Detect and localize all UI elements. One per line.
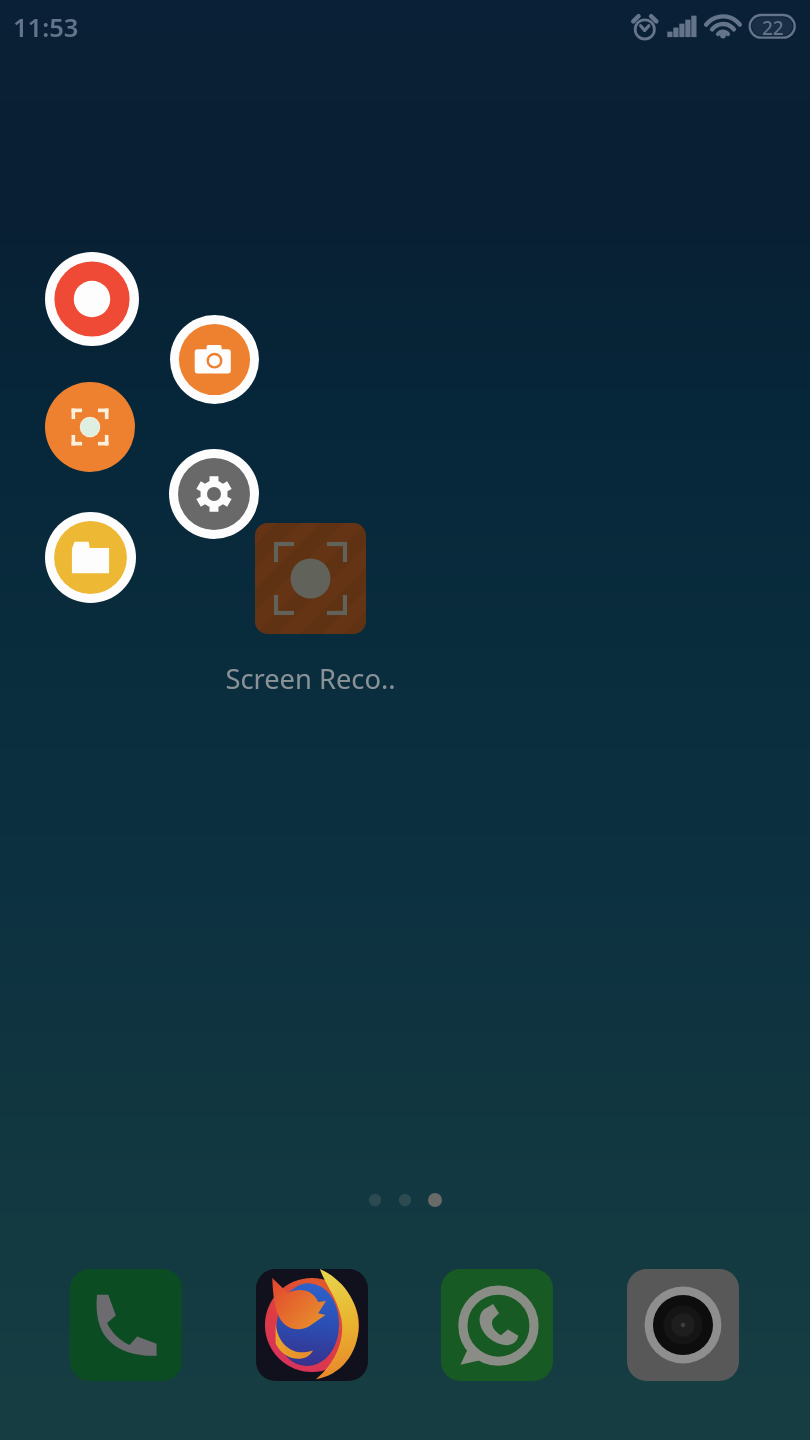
button[interactable]: Settings — [169, 449, 259, 539]
button[interactable]: Firefox — [256, 1269, 368, 1381]
button[interactable]: Camera — [627, 1269, 739, 1381]
button[interactable]: Phone — [70, 1269, 182, 1381]
staticText: 22 — [762, 15, 784, 38]
button[interactable]: Files — [45, 512, 136, 603]
button[interactable]: WhatsApp — [441, 1269, 553, 1381]
button[interactable]: Record — [45, 252, 139, 346]
staticText: 11:53 — [13, 10, 79, 45]
button[interactable]: Screen Reco.. — [200, 523, 420, 697]
button[interactable]: Screenshot — [170, 315, 259, 404]
staticText: Screen Reco.. — [225, 660, 396, 697]
button[interactable]: Capture region — [45, 382, 135, 472]
